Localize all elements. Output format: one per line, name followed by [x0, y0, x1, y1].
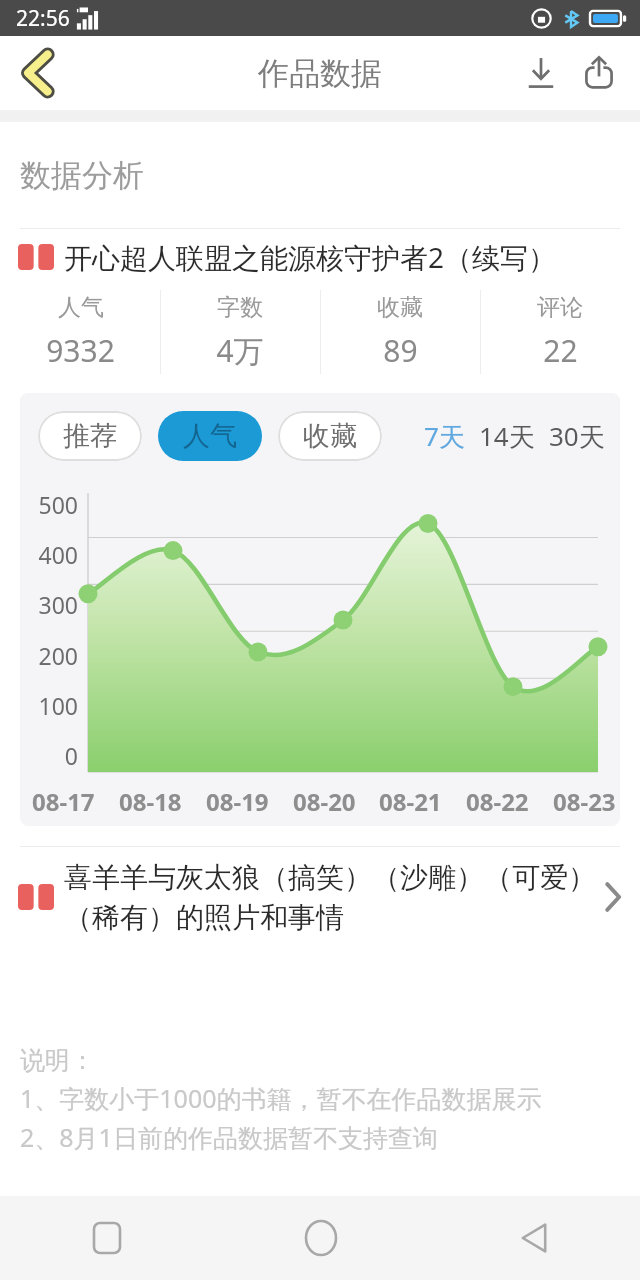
- button[interactable]: 30天: [546, 412, 608, 460]
- staticText: 500: [38, 489, 78, 520]
- button[interactable]: Recent apps: [0, 1196, 214, 1280]
- staticText: 收藏: [303, 419, 357, 453]
- button[interactable]: Back: [0, 36, 74, 110]
- button[interactable]: 开心超人联盟之能源核守护者2（续写）: [0, 229, 640, 285]
- button[interactable]: 7天: [421, 412, 468, 460]
- staticText: （稀有）的照片和事情: [64, 900, 344, 935]
- staticText: 14天: [479, 418, 535, 454]
- staticText: 数据分析: [20, 156, 144, 195]
- staticText: 08-21: [379, 785, 442, 818]
- staticText: 收藏: [377, 293, 423, 322]
- staticText: 开心超人联盟之能源核守护者2（续写）: [64, 238, 557, 276]
- staticText: 30天: [549, 418, 605, 454]
- staticText: 08-18: [119, 785, 182, 818]
- staticText: 喜羊羊与灰太狼（搞笑）（沙雕）（可爱）: [64, 860, 596, 895]
- staticText: 2、8月1日前的作品数据暂不支持查询: [20, 1120, 438, 1154]
- button[interactable]: 收藏: [278, 411, 382, 461]
- staticText: 100: [38, 690, 78, 721]
- staticText: 22: [543, 330, 578, 371]
- button[interactable]: 14天: [476, 412, 538, 460]
- button[interactable]: 推荐: [38, 411, 142, 461]
- staticText: 评论: [537, 293, 583, 322]
- staticText: 08-17: [32, 785, 95, 818]
- staticText: 4万: [216, 330, 264, 371]
- staticText: 说明：: [20, 1045, 95, 1076]
- staticText: 08-23: [553, 785, 616, 818]
- staticText: 08-20: [293, 785, 356, 818]
- staticText: 推荐: [63, 419, 117, 453]
- staticText: 9332: [46, 330, 115, 371]
- staticText: 1、字数小于1000的书籍，暂不在作品数据展示: [20, 1081, 542, 1115]
- button[interactable]: 人气: [158, 411, 262, 461]
- staticText: 08-22: [466, 785, 529, 818]
- button[interactable]: 喜羊羊与灰太狼（搞笑）（沙雕）（可爱）: [0, 847, 640, 947]
- staticText: 400: [38, 539, 78, 570]
- staticText: 22:56: [16, 4, 70, 33]
- staticText: 89: [383, 330, 418, 371]
- button[interactable]: Home: [214, 1196, 427, 1280]
- staticText: 200: [38, 640, 78, 671]
- staticText: 人气: [183, 419, 237, 453]
- staticText: 人气: [58, 293, 104, 322]
- staticText: 0: [64, 740, 78, 771]
- staticText: 7天: [424, 418, 465, 454]
- staticText: 字数: [217, 293, 263, 322]
- button[interactable]: Share: [570, 44, 628, 102]
- staticText: 作品数据: [258, 54, 382, 93]
- button[interactable]: Download: [512, 44, 570, 102]
- staticText: 08-19: [206, 785, 269, 818]
- button[interactable]: Back: [427, 1196, 640, 1280]
- staticText: 300: [38, 589, 78, 620]
